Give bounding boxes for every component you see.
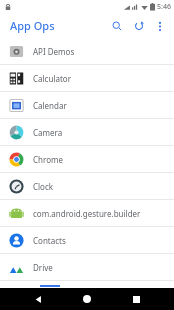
- staticText: Contacts: [33, 235, 66, 246]
- button[interactable]: Refresh: [128, 15, 150, 37]
- button[interactable]: Contacts: [0, 227, 174, 253]
- button[interactable]: Search: [106, 15, 128, 37]
- staticText: Chrome: [33, 154, 63, 165]
- staticText: API Demos: [33, 46, 75, 57]
- staticText: App Ops: [10, 18, 55, 33]
- button[interactable]: More options: [150, 16, 170, 36]
- staticText: 5:46: [157, 2, 171, 12]
- button[interactable]: Recents: [125, 288, 147, 310]
- staticText: Drive: [33, 262, 53, 273]
- staticText: Clock: [33, 181, 54, 192]
- button[interactable]: Drive: [0, 254, 174, 280]
- button[interactable]: Calculator: [0, 65, 174, 91]
- staticText: Camera: [33, 127, 63, 138]
- staticText: Calendar: [33, 100, 67, 111]
- staticText: com.android.gesture.builder: [33, 208, 141, 219]
- button[interactable]: Clock: [0, 173, 174, 199]
- staticText: Calculator: [33, 73, 71, 84]
- button[interactable]: Back: [27, 288, 49, 310]
- button[interactable]: API Demos: [0, 38, 174, 64]
- button[interactable]: Camera: [0, 119, 174, 145]
- button[interactable]: com.android.gesture.builder: [0, 200, 174, 226]
- button[interactable]: Chrome: [0, 146, 174, 172]
- button[interactable]: Home: [76, 288, 98, 310]
- button[interactable]: Calendar: [0, 92, 174, 118]
